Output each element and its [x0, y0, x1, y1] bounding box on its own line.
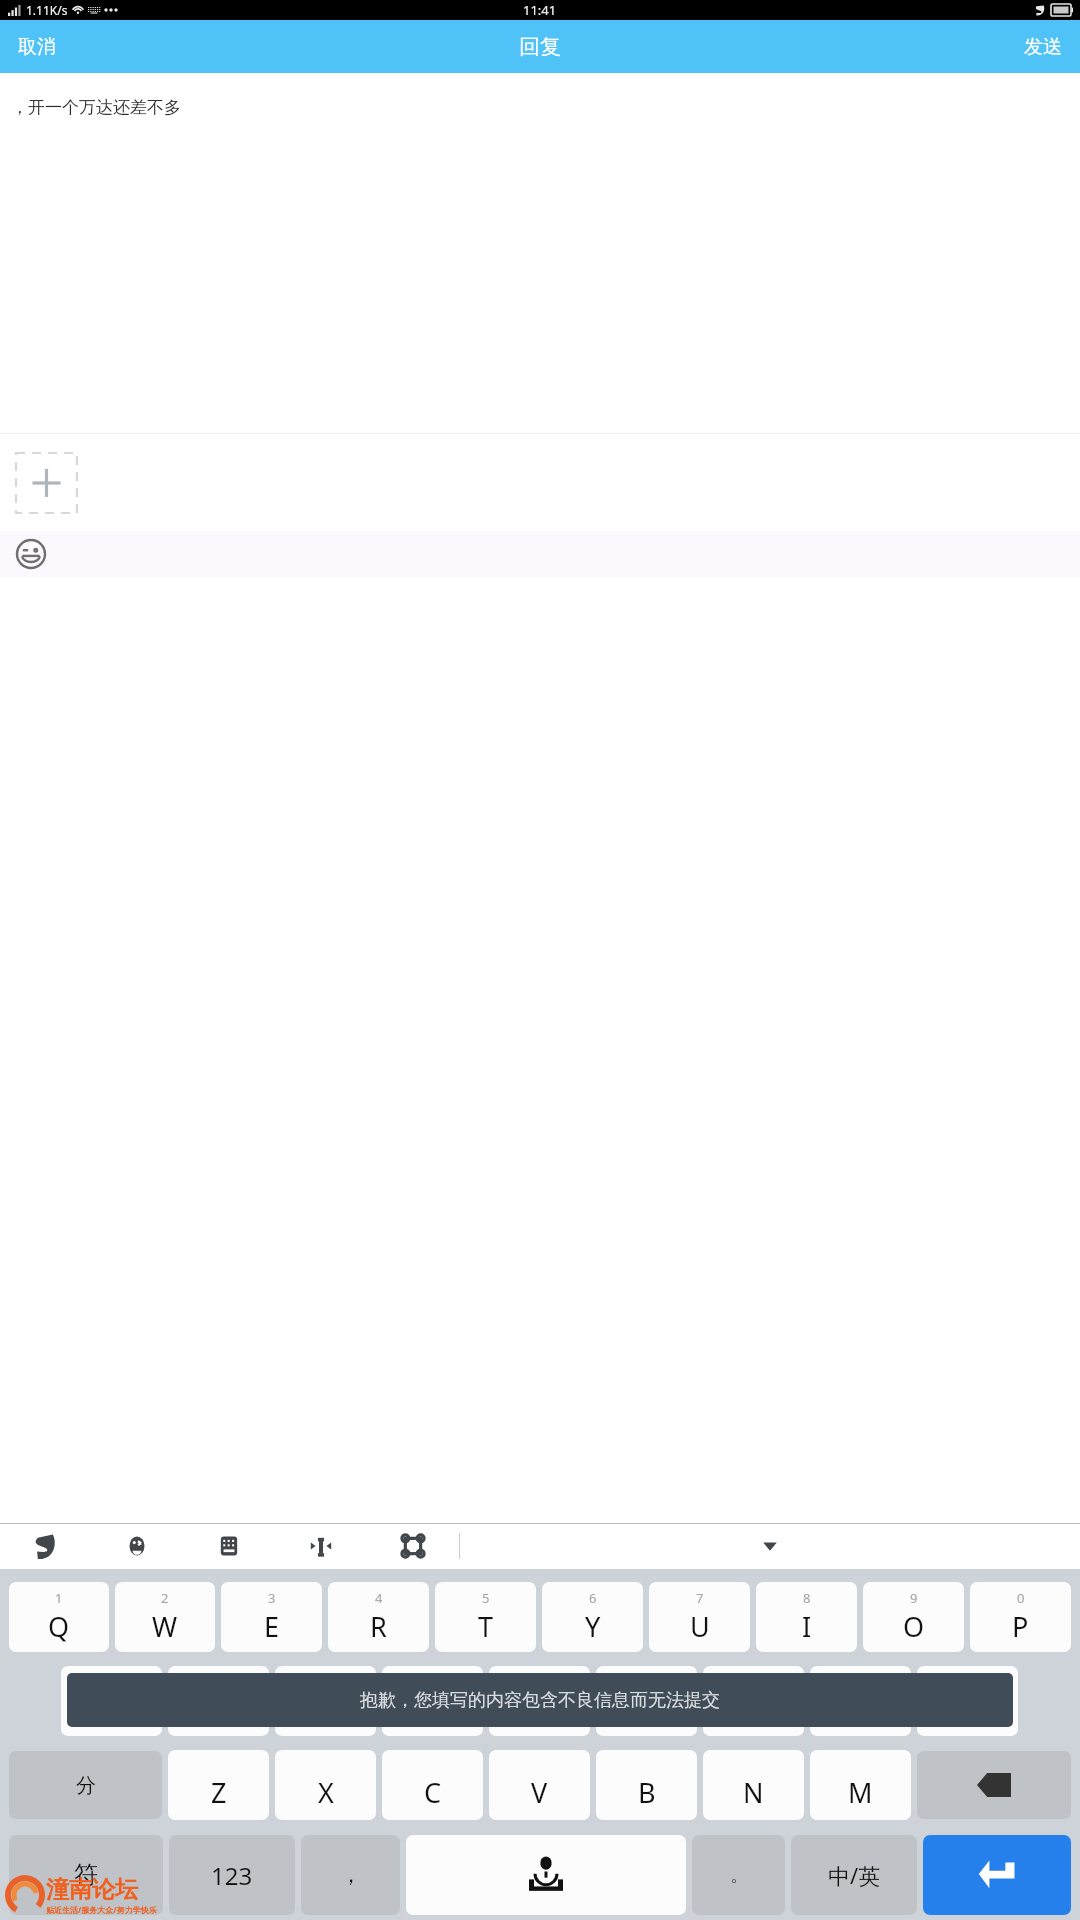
staticText: L [960, 1692, 975, 1729]
staticText: 8 [803, 1589, 811, 1607]
staticText: 分 [76, 1773, 96, 1798]
button[interactable]: % [489, 1666, 590, 1736]
staticText: G [530, 1692, 550, 1729]
button[interactable]: Sogou input [0, 1523, 91, 1569]
button[interactable]: Add image [16, 453, 77, 513]
button[interactable]: 7 [649, 1582, 750, 1652]
staticText: 11:41 [523, 1, 557, 19]
button[interactable]: 符 [9, 1835, 163, 1915]
button[interactable]: M [810, 1750, 911, 1820]
staticText: 潼南论坛 [46, 1875, 138, 1904]
button[interactable]: 9 [863, 1582, 964, 1652]
button[interactable]: ~ [61, 1666, 162, 1736]
button[interactable]: Backspace [917, 1751, 1071, 1819]
staticText: J [750, 1692, 758, 1729]
staticText: 4 [375, 1589, 383, 1607]
staticText: 123 [211, 1859, 253, 1892]
staticText: X [318, 1774, 334, 1811]
staticText: 1.11K/s [26, 2, 68, 18]
button[interactable]: * [810, 1666, 911, 1736]
staticText: 回复 [519, 34, 561, 60]
staticText: M [848, 1774, 873, 1811]
staticText: H [636, 1692, 657, 1729]
button[interactable]: 1 [9, 1582, 109, 1652]
button[interactable]: Enter [923, 1835, 1071, 1915]
staticText: C [424, 1774, 442, 1811]
button[interactable]: " [703, 1666, 804, 1736]
staticText: O [903, 1608, 925, 1645]
button[interactable]: Emoji [13, 536, 49, 572]
staticText: F [425, 1692, 440, 1729]
staticText: ，开一个万达还差不多 [11, 97, 181, 118]
button[interactable]: 分 [9, 1751, 162, 1819]
staticText: 0 [1017, 1589, 1025, 1607]
staticText: 6 [589, 1589, 597, 1607]
staticText: S [211, 1692, 226, 1729]
staticText: 3 [268, 1589, 276, 1607]
staticText: 抱歉，您填写的内容包含不良信息而无法提交 [360, 1689, 720, 1712]
staticText: V [531, 1774, 548, 1811]
button[interactable]: Keyboard layout [183, 1523, 275, 1569]
staticText: A [103, 1692, 121, 1729]
button[interactable]: 6 [542, 1582, 643, 1652]
staticText: I [802, 1608, 812, 1645]
staticText: 中/英 [828, 1860, 881, 1890]
button[interactable]: 0 [970, 1582, 1071, 1652]
staticText: 贴近生活/服务大众/努力学快乐 [46, 1904, 157, 1915]
staticText: ， [340, 1861, 362, 1889]
staticText: Z [211, 1774, 227, 1811]
button[interactable]: Z [168, 1750, 269, 1820]
button[interactable]: 4 [328, 1582, 429, 1652]
staticText: T [478, 1608, 494, 1645]
button[interactable]: C [382, 1750, 483, 1820]
button[interactable]: B [596, 1750, 697, 1820]
button[interactable]: X [275, 1750, 376, 1820]
button[interactable]: 2 [115, 1582, 215, 1652]
button[interactable]: # [382, 1666, 483, 1736]
staticText: U [690, 1608, 710, 1645]
staticText: 取消 [18, 35, 56, 59]
button[interactable]: 取消 [0, 23, 74, 71]
button[interactable]: ! [168, 1666, 269, 1736]
button[interactable]: @ [275, 1666, 376, 1736]
staticText: R [370, 1608, 387, 1645]
button[interactable]: V [489, 1750, 590, 1820]
button[interactable]: 3 [221, 1582, 322, 1652]
staticText: 7 [696, 1589, 704, 1607]
button[interactable]: 中/英 [791, 1835, 917, 1915]
staticText: 符 [74, 1860, 98, 1890]
button[interactable]: Hide keyboard [460, 1523, 1080, 1569]
button[interactable]: Move cursor [275, 1523, 367, 1569]
button[interactable]: 发送 [1006, 23, 1080, 71]
button[interactable]: ， [301, 1835, 400, 1915]
staticText: E [264, 1608, 280, 1645]
button[interactable]: 5 [435, 1582, 536, 1652]
staticText: 5 [482, 1589, 490, 1607]
staticText: 1 [55, 1589, 63, 1607]
button[interactable]: " [596, 1666, 697, 1736]
button[interactable]: Space [406, 1835, 686, 1915]
staticText: K [852, 1692, 869, 1729]
staticText: 2 [161, 1589, 169, 1607]
staticText: 9 [910, 1589, 918, 1607]
button[interactable]: 8 [756, 1582, 857, 1652]
staticText: Q [48, 1608, 70, 1645]
staticText: N [743, 1774, 764, 1811]
button[interactable]: N [703, 1750, 804, 1820]
button[interactable]: ? [917, 1666, 1018, 1736]
staticText: P [1012, 1608, 1029, 1645]
staticText: 发送 [1024, 35, 1062, 59]
staticText: Y [585, 1608, 601, 1645]
button[interactable]: 123 [169, 1835, 295, 1915]
button[interactable]: Shortcuts [367, 1523, 459, 1569]
button[interactable]: Emoji [91, 1523, 183, 1569]
button[interactable]: 。 [692, 1835, 785, 1915]
